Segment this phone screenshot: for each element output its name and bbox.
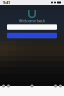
button[interactable]: Share — [30, 84, 33, 87]
button[interactable]: Forward — [7, 84, 10, 87]
button[interactable]: Tabs — [59, 84, 62, 87]
button[interactable]: Back — [2, 84, 5, 87]
staticText: Welcome back — [19, 18, 45, 23]
button[interactable]: Bookmarks — [54, 84, 57, 87]
staticText: 9:41 — [3, 0, 10, 5]
